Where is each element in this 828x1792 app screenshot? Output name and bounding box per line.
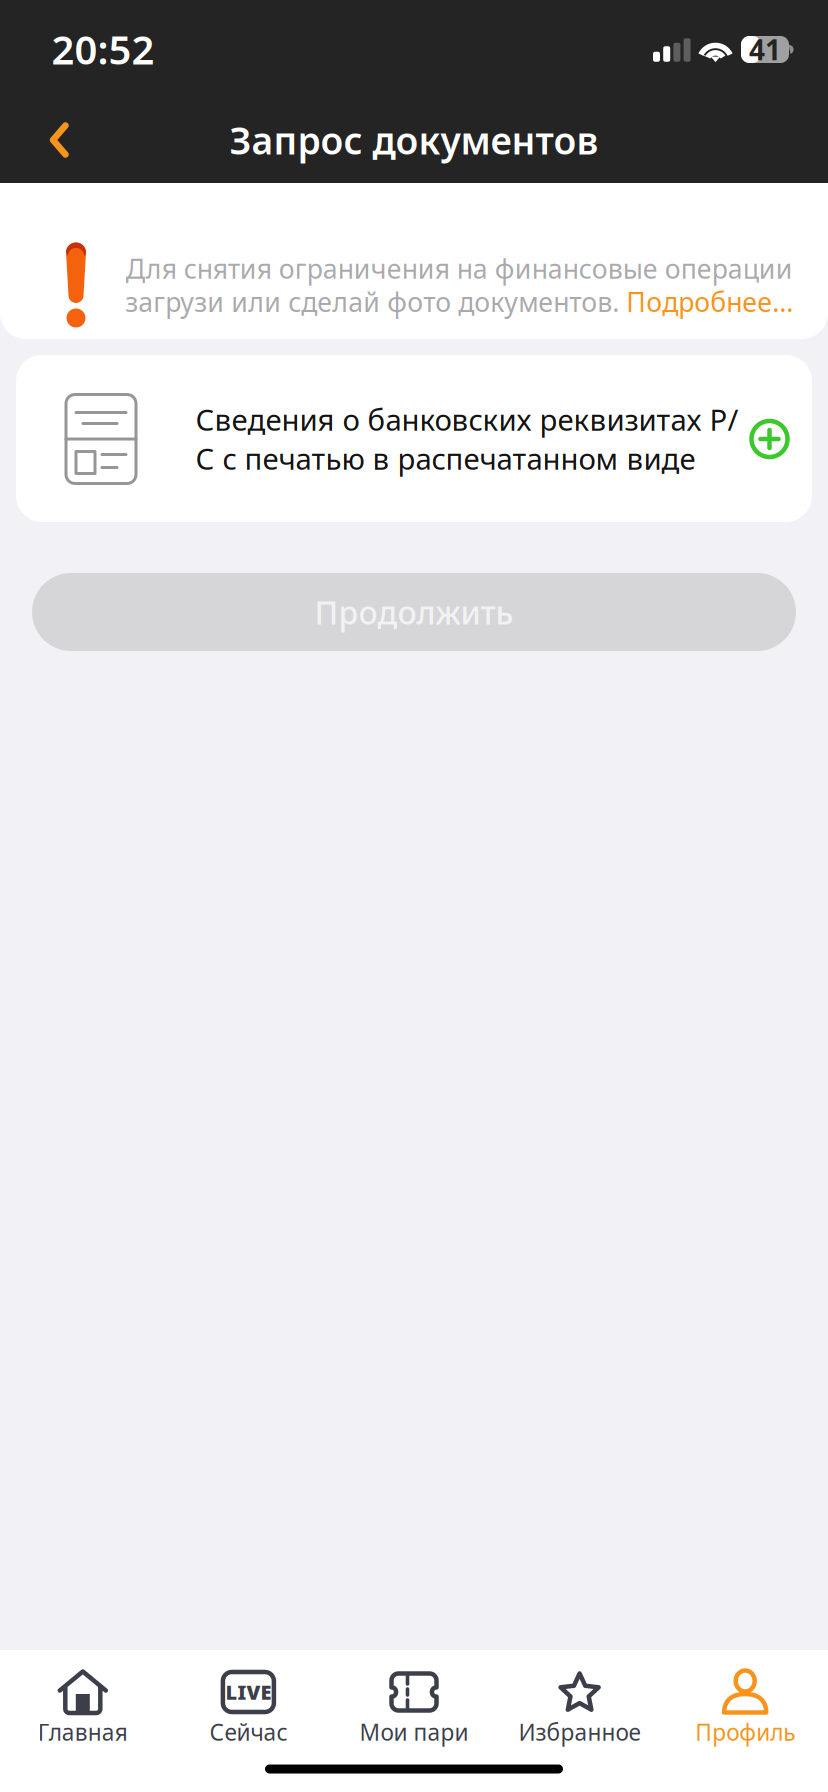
staticText: LIVE: [225, 1679, 271, 1705]
staticText: Мои пари: [359, 1717, 468, 1747]
button[interactable]: Профиль: [662, 1650, 828, 1750]
staticText: Сейчас: [209, 1717, 287, 1747]
button[interactable]: Продолжить: [32, 573, 796, 651]
button[interactable]: Назад: [16, 96, 104, 183]
staticText: Сведения о банковских реквизитах Р/С с п…: [195, 400, 738, 478]
button[interactable]: Главная: [0, 1650, 166, 1750]
staticText: Профиль: [695, 1717, 795, 1747]
staticText: 20:52: [51, 22, 154, 75]
staticText: Для снятия ограничения на финансовые опе…: [125, 251, 793, 319]
staticText: Продолжить: [314, 591, 513, 633]
staticText: Главная: [38, 1717, 128, 1747]
button[interactable]: LIVE: [166, 1650, 331, 1750]
staticText: Избранное: [519, 1717, 641, 1747]
button[interactable]: Сведения о банковских реквизитах Р/С с п…: [16, 355, 812, 522]
button[interactable]: Избранное: [497, 1650, 662, 1750]
button[interactable]: Мои пари: [331, 1650, 497, 1750]
staticText: 41: [749, 31, 781, 68]
staticText: Запрос документов: [229, 115, 598, 165]
